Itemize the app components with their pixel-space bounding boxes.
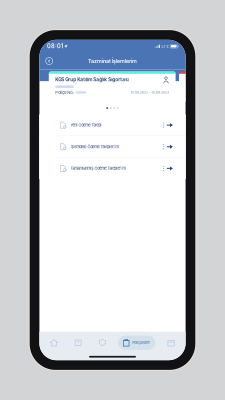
button[interactable]: Back (43, 55, 55, 67)
staticText: 08:01 (47, 43, 63, 50)
staticText: Tamamlanmış Ödeme Taleplerim (70, 166, 125, 171)
button[interactable]: Randevu (163, 335, 180, 351)
staticText: Yeni Ödeme Talebi (70, 123, 101, 127)
button[interactable]: Kartlarım (70, 335, 87, 351)
button[interactable]: İşlemdeki Ödeme Taleplerim (39, 136, 186, 157)
button[interactable]: Sağlık (94, 335, 111, 351)
staticText: LTE (161, 44, 168, 49)
button[interactable]: Yeni Ödeme Talebi (39, 114, 186, 136)
staticText: KGS Grup Katılım Sağlık Sigortası (55, 77, 129, 82)
staticText: Poliçe No.: (55, 90, 74, 95)
staticText: 01.09.2022 - 01.09.2023 (131, 90, 169, 94)
button[interactable]: Poliçelerim (118, 335, 155, 350)
staticText: Poliçelerim (132, 340, 150, 345)
button[interactable]: Ana Sayfa (45, 335, 62, 351)
button[interactable]: Tamamlanmış Ödeme Taleplerim (39, 158, 186, 179)
staticText: İşlemdeki Ödeme Taleplerim (70, 144, 118, 149)
staticText: Tazminat İşlemlerim (88, 58, 137, 64)
